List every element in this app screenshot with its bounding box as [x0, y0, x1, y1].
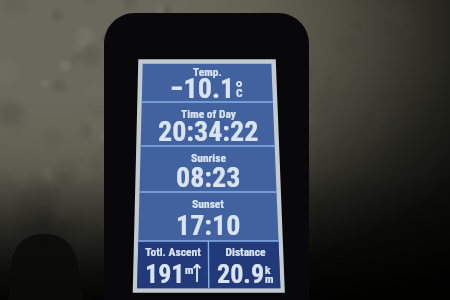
staticText: Time of Day — [181, 107, 236, 120]
button[interactable]: Time of Day — [141, 102, 275, 146]
staticText: 08:23 — [176, 161, 241, 194]
staticText: C — [236, 86, 243, 99]
staticText: 20.9 — [217, 259, 265, 289]
staticText: m — [185, 263, 194, 276]
button[interactable]: Distance — [209, 241, 281, 288]
staticText: Totl. Ascent — [145, 245, 201, 258]
button[interactable]: Totl. Ascent — [137, 241, 209, 288]
button[interactable]: Temp. — [142, 64, 273, 102]
staticText: 17:10 — [176, 209, 241, 242]
staticText: k — [265, 263, 271, 276]
staticText: Sunset — [192, 197, 224, 210]
staticText: Sunrise — [191, 151, 226, 164]
button[interactable]: Sunrise — [140, 146, 277, 192]
staticText: 191 — [145, 259, 185, 289]
staticText: 20:34:22 — [158, 115, 259, 148]
staticText: Temp. — [193, 65, 222, 78]
staticText: Distance — [225, 245, 266, 258]
staticText: −10.1 — [170, 72, 235, 105]
staticText: m — [265, 272, 274, 285]
button[interactable]: Sunset — [138, 192, 278, 241]
